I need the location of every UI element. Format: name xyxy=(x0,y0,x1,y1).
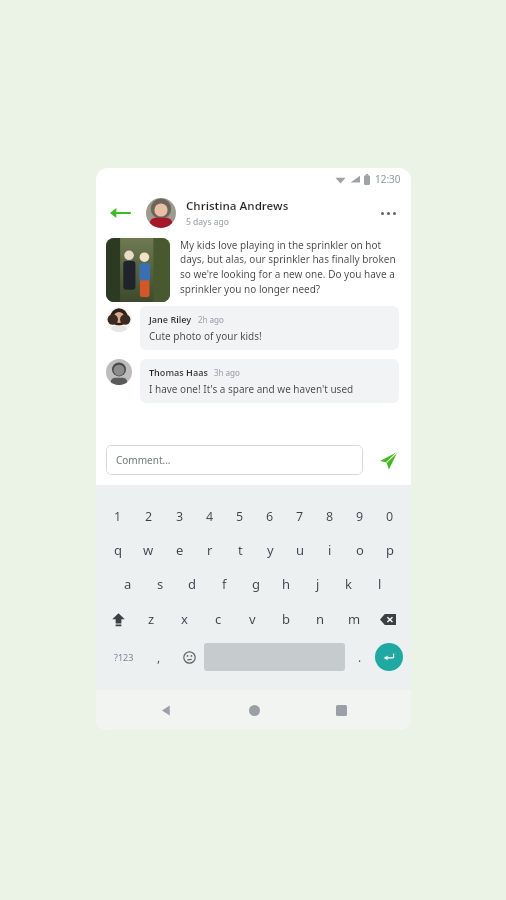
staticText: q xyxy=(114,541,122,559)
button[interactable]: 6 xyxy=(255,505,285,527)
staticText: o xyxy=(356,541,364,559)
staticText: 2h ago xyxy=(198,314,224,325)
button[interactable]: k xyxy=(333,573,364,595)
button[interactable]: x xyxy=(168,607,201,631)
button[interactable]: d xyxy=(176,573,208,595)
button[interactable]: i xyxy=(315,539,345,561)
button[interactable]: Recents xyxy=(324,693,358,727)
staticText: z xyxy=(148,610,155,628)
button[interactable]: 5 xyxy=(225,505,255,527)
button[interactable]: f xyxy=(208,573,240,595)
button[interactable]: o xyxy=(345,539,375,561)
staticText: p xyxy=(386,541,394,559)
staticText: 8 xyxy=(326,508,334,525)
button[interactable]: 2 xyxy=(133,505,164,527)
staticText: 4 xyxy=(206,508,214,525)
staticText: Comment... xyxy=(116,453,171,467)
staticText: 7 xyxy=(296,508,304,525)
button[interactable]: Send xyxy=(375,447,401,473)
staticText: t xyxy=(238,541,243,559)
staticText: , xyxy=(157,649,161,665)
staticText: ?123 xyxy=(114,651,134,663)
button[interactable]: p xyxy=(375,539,405,561)
button[interactable]: Back xyxy=(106,199,134,227)
button[interactable]: Comment... xyxy=(106,445,363,475)
staticText: 3h ago xyxy=(214,367,240,378)
staticText: m xyxy=(348,610,361,628)
staticText: 9 xyxy=(356,508,364,525)
button[interactable]: Thomas Haas xyxy=(106,359,399,403)
button[interactable]: 1 xyxy=(102,505,133,527)
staticText: h xyxy=(282,575,291,593)
staticText: d xyxy=(188,575,196,593)
button[interactable]: t xyxy=(225,539,255,561)
staticText: c xyxy=(215,610,222,628)
button[interactable]: b xyxy=(269,607,303,631)
staticText: v xyxy=(249,610,256,628)
staticText: x xyxy=(181,610,188,628)
button[interactable]: Shift xyxy=(102,607,135,631)
button[interactable]: Enter xyxy=(375,643,403,671)
button[interactable]: 3 xyxy=(164,505,195,527)
button[interactable]: l xyxy=(364,573,395,595)
staticText: I have one! It's a spare and we haven't … xyxy=(149,382,354,396)
button[interactable]: s xyxy=(144,573,176,595)
button[interactable]: 8 xyxy=(315,505,345,527)
button[interactable]: y xyxy=(255,539,285,561)
staticText: e xyxy=(176,541,184,559)
button[interactable]: r xyxy=(195,539,225,561)
button[interactable]: Backspace xyxy=(371,607,405,631)
staticText: 6 xyxy=(266,508,274,525)
button[interactable]: Back xyxy=(149,693,183,727)
button[interactable]: z xyxy=(135,607,168,631)
button[interactable]: v xyxy=(235,607,269,631)
staticText: 5 days ago xyxy=(186,216,229,228)
staticText: j xyxy=(316,575,320,593)
button[interactable]: 0 xyxy=(375,505,405,527)
button[interactable]: n xyxy=(303,607,337,631)
staticText: k xyxy=(345,575,352,593)
staticText: . xyxy=(358,649,362,665)
button[interactable]: 4 xyxy=(195,505,225,527)
button[interactable]: g xyxy=(240,573,271,595)
button[interactable]: w xyxy=(133,539,164,561)
staticText: Jane Riley xyxy=(149,313,192,325)
button[interactable]: Jane Riley xyxy=(106,306,399,350)
staticText: b xyxy=(282,610,290,628)
staticText: s xyxy=(157,575,164,593)
button[interactable]: More options xyxy=(375,200,401,226)
staticText: Christina Andrews xyxy=(186,198,289,214)
button[interactable]: Home xyxy=(237,693,271,727)
button[interactable]: q xyxy=(102,539,133,561)
staticText: g xyxy=(252,575,260,593)
button[interactable]: h xyxy=(271,573,302,595)
staticText: l xyxy=(378,575,382,593)
staticText: My kids love playing in the sprinkler on… xyxy=(180,238,399,296)
staticText: 2 xyxy=(145,508,153,525)
staticText: 3 xyxy=(176,508,184,525)
staticText: Cute photo of your kids! xyxy=(149,329,262,343)
button[interactable]: c xyxy=(201,607,235,631)
button[interactable]: u xyxy=(285,539,315,561)
staticText: Thomas Haas xyxy=(149,366,208,378)
button[interactable]: m xyxy=(337,607,371,631)
button[interactable]: a xyxy=(112,573,144,595)
button[interactable]: 9 xyxy=(345,505,375,527)
button[interactable]: ?123 xyxy=(104,643,144,671)
staticText: 1 xyxy=(114,508,122,525)
staticText: y xyxy=(267,541,274,559)
staticText: 0 xyxy=(386,508,394,525)
button[interactable]: . xyxy=(345,643,375,671)
button[interactable]: , xyxy=(144,643,174,671)
button[interactable]: Emoji xyxy=(174,643,204,671)
button[interactable]: j xyxy=(302,573,333,595)
staticText: w xyxy=(143,541,154,559)
button[interactable]: 7 xyxy=(285,505,315,527)
button[interactable]: e xyxy=(164,539,195,561)
staticText: i xyxy=(328,541,332,559)
staticText: n xyxy=(316,610,325,628)
staticText: u xyxy=(296,541,305,559)
staticText: 12:30 xyxy=(375,172,401,186)
staticText: a xyxy=(124,575,132,593)
